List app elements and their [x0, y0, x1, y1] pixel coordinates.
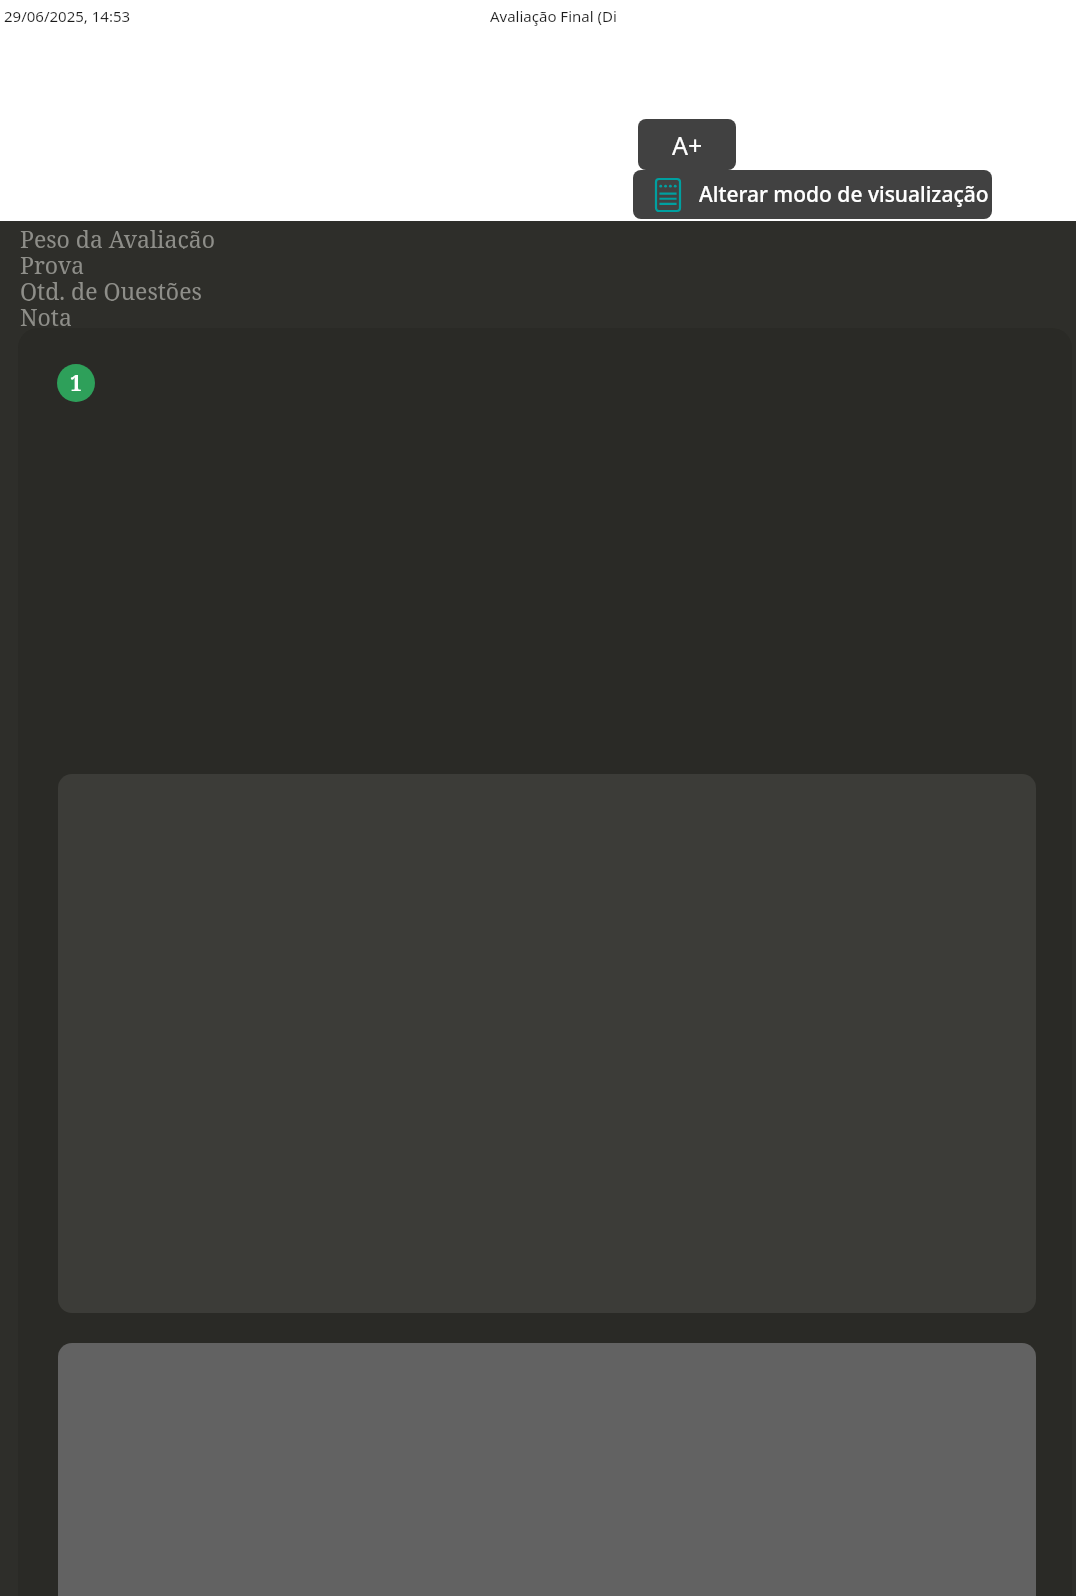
button[interactable]: 1 — [57, 364, 95, 402]
button[interactable]: Alterar modo de visualização — [633, 170, 992, 219]
button[interactable]: 1 — [18, 328, 1072, 1596]
button[interactable]: A+ — [638, 119, 736, 170]
staticText: A+ — [672, 128, 703, 162]
staticText: 29/06/2025, 14:53 — [4, 6, 131, 26]
staticText: Qtd. de Questões — [20, 275, 202, 301]
staticText: 1 — [70, 369, 82, 398]
staticText: Prova — [20, 249, 85, 275]
staticText: Nota — [20, 301, 72, 327]
staticText: Peso da Avaliação — [20, 223, 215, 249]
staticText: Alterar modo de visualização — [699, 180, 989, 209]
staticText: Avaliação Final (Di — [490, 6, 617, 26]
